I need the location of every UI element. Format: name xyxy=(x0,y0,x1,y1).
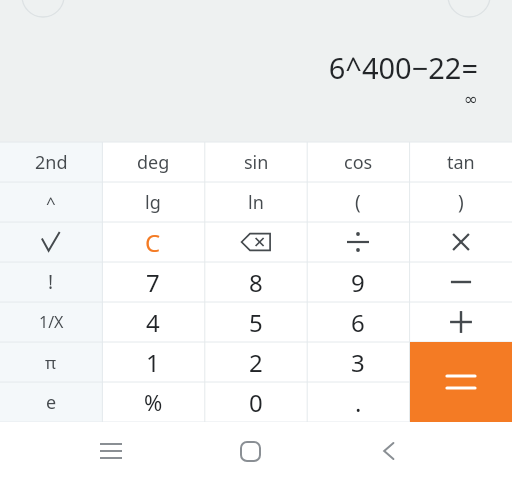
button[interactable]: C xyxy=(102,222,204,262)
button[interactable]: e xyxy=(0,382,102,422)
button[interactable]: cos xyxy=(307,142,409,182)
button[interactable]: 3 xyxy=(307,342,409,382)
button[interactable]: 6 xyxy=(307,302,409,342)
staticText: deg xyxy=(137,150,170,175)
staticText: π xyxy=(45,351,57,374)
staticText: 3 xyxy=(351,346,365,379)
staticText: e xyxy=(46,390,57,415)
button[interactable]: deg xyxy=(102,142,204,182)
staticText: 5 xyxy=(249,306,263,339)
button[interactable]: Back xyxy=(361,423,417,479)
button[interactable]: Home xyxy=(222,423,278,479)
button[interactable]: 2 xyxy=(205,342,307,382)
staticText: 1 xyxy=(146,346,160,379)
button[interactable]: Recent apps xyxy=(83,423,139,479)
staticText: 4 xyxy=(146,306,160,339)
button[interactable]: Divide xyxy=(307,222,409,262)
button[interactable]: Plus xyxy=(410,302,512,342)
staticText: % xyxy=(144,387,163,417)
staticText: tan xyxy=(447,150,475,175)
button[interactable]: lg xyxy=(102,182,204,222)
staticText: lg xyxy=(145,190,161,215)
button[interactable]: 9 xyxy=(307,262,409,302)
button[interactable]: Multiply xyxy=(410,222,512,262)
button[interactable]: 5 xyxy=(205,302,307,342)
staticText: 7 xyxy=(146,266,160,299)
button[interactable] xyxy=(410,342,512,422)
staticText: ln xyxy=(248,190,264,215)
staticText: 6^400−22= xyxy=(328,48,478,87)
button[interactable]: 8 xyxy=(205,262,307,302)
staticText: 9 xyxy=(351,266,365,299)
staticText: ^ xyxy=(46,191,56,214)
button[interactable]: sin xyxy=(205,142,307,182)
staticText: . xyxy=(355,386,362,419)
button[interactable]: tan xyxy=(410,142,512,182)
button[interactable]: ! xyxy=(0,262,102,302)
staticText: ( xyxy=(355,189,361,215)
button[interactable]: ln xyxy=(205,182,307,222)
button[interactable]: % xyxy=(102,382,204,422)
button[interactable]: 7 xyxy=(102,262,204,302)
button[interactable]: ( xyxy=(307,182,409,222)
staticText: 2nd xyxy=(35,150,68,175)
staticText: ! xyxy=(48,269,54,295)
button[interactable]: Minus xyxy=(410,262,512,302)
button[interactable]: 1/X xyxy=(0,302,102,342)
staticText: sin xyxy=(244,150,269,175)
button[interactable]: 4 xyxy=(102,302,204,342)
button[interactable]: ) xyxy=(410,182,512,222)
button[interactable]: Square root xyxy=(0,222,102,262)
button[interactable]: 1 xyxy=(102,342,204,382)
button[interactable]: 0 xyxy=(205,382,307,422)
staticText: ∞ xyxy=(463,89,478,109)
staticText: C xyxy=(145,226,161,259)
staticText: 8 xyxy=(249,266,263,299)
button[interactable]: ^ xyxy=(0,182,102,222)
button[interactable]: π xyxy=(0,342,102,382)
staticText: ) xyxy=(458,189,464,215)
staticText: 2 xyxy=(249,346,263,379)
button[interactable]: . xyxy=(307,382,409,422)
staticText: 1/X xyxy=(39,311,64,333)
button[interactable]: Backspace xyxy=(205,222,307,262)
staticText: cos xyxy=(344,150,373,175)
staticText: 6 xyxy=(351,306,365,339)
button[interactable]: 2nd xyxy=(0,142,102,182)
staticText: 0 xyxy=(249,386,263,419)
